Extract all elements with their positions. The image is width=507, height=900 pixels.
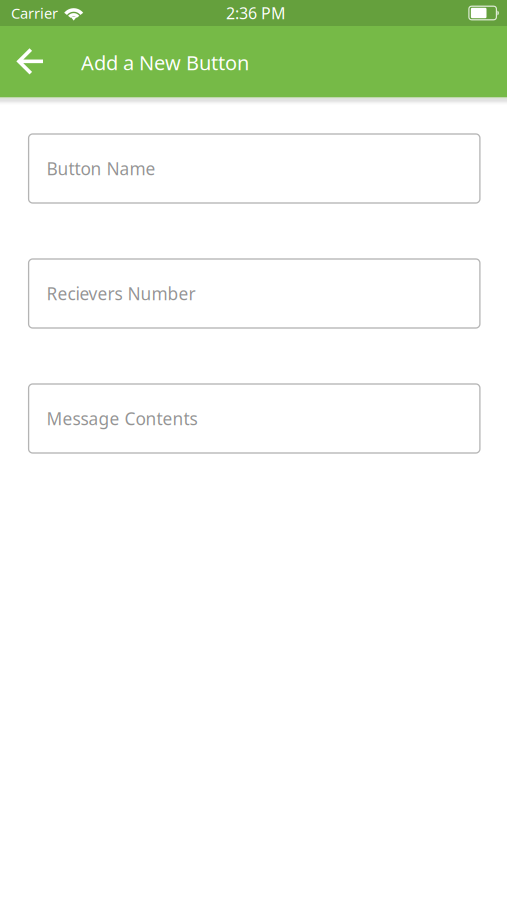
staticText: 2:36 PM — [226, 2, 286, 24]
staticText: Message Contents — [46, 407, 197, 430]
staticText: Button Name — [46, 157, 155, 180]
button[interactable]: Back — [0, 26, 81, 97]
staticText: Add a New Button — [81, 49, 249, 76]
button[interactable]: Recievers Number — [29, 259, 480, 328]
staticText: Carrier — [11, 3, 58, 23]
button[interactable]: Message Contents — [29, 384, 480, 453]
staticText: Recievers Number — [46, 282, 195, 305]
button[interactable]: Button Name — [29, 134, 480, 203]
